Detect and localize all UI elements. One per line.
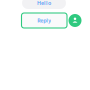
button[interactable]: Hello bbox=[22, 0, 66, 9]
staticText: Reply bbox=[37, 17, 51, 24]
staticText: Hello bbox=[37, 0, 51, 7]
button[interactable]: Account bbox=[68, 14, 81, 27]
button[interactable]: Reply bbox=[21, 13, 67, 28]
